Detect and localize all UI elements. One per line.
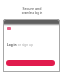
staticText: or sign up [17, 43, 33, 47]
button[interactable]: Continue [6, 60, 55, 66]
staticText: Log in [7, 43, 17, 47]
staticText: Secure and [0, 6, 64, 11]
staticText: seamless log in [0, 11, 64, 15]
